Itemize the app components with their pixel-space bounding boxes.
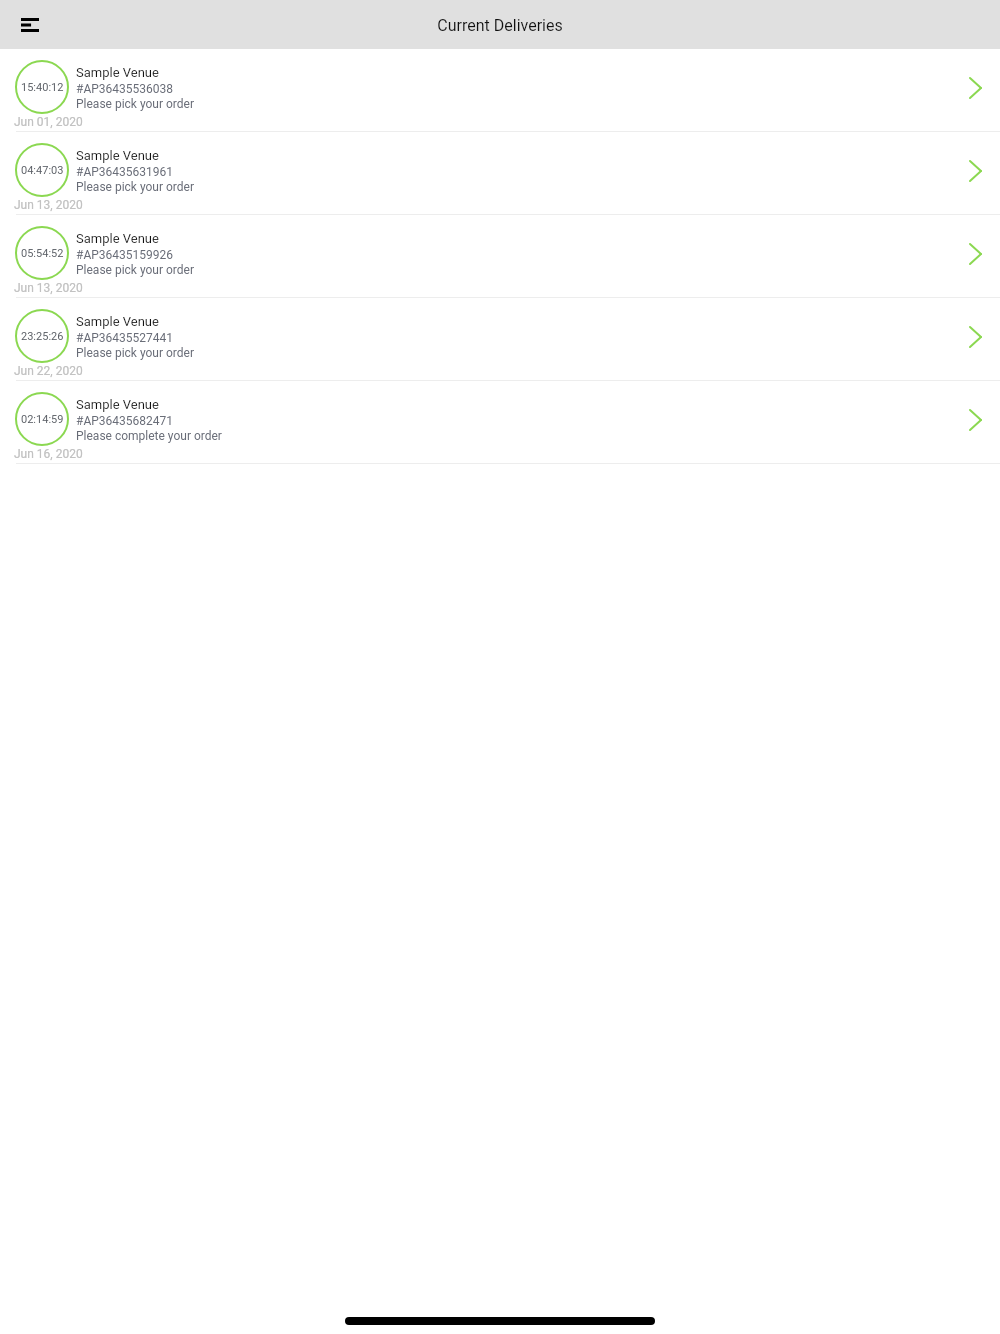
- staticText: Jun 13, 2020: [14, 281, 83, 295]
- staticText: Please pick your order: [76, 263, 194, 277]
- staticText: Current Deliveries: [437, 16, 563, 35]
- staticText: #AP36435631961: [76, 165, 173, 179]
- button[interactable]: 15:40:12: [0, 49, 1000, 132]
- staticText: Sample Venue: [76, 148, 159, 163]
- staticText: #AP36435536038: [76, 82, 173, 96]
- staticText: 15:40:12: [21, 81, 64, 94]
- staticText: Jun 22, 2020: [14, 364, 83, 378]
- button[interactable]: 23:25:26: [0, 298, 1000, 381]
- button[interactable]: 02:14:59: [0, 381, 1000, 464]
- staticText: Jun 16, 2020: [14, 447, 83, 461]
- staticText: Jun 13, 2020: [14, 198, 83, 212]
- staticText: Please complete your order: [76, 429, 222, 443]
- staticText: #AP36435159926: [76, 248, 173, 262]
- staticText: Sample Venue: [76, 65, 159, 80]
- staticText: #AP36435527441: [76, 331, 173, 345]
- button[interactable]: 04:47:03: [0, 132, 1000, 215]
- button[interactable]: Open navigation menu: [6, 1, 54, 49]
- staticText: Jun 01, 2020: [14, 115, 83, 129]
- staticText: 23:25:26: [21, 330, 64, 343]
- staticText: Please pick your order: [76, 346, 194, 360]
- staticText: Sample Venue: [76, 314, 159, 329]
- staticText: Please pick your order: [76, 180, 194, 194]
- staticText: Sample Venue: [76, 397, 159, 412]
- staticText: 04:47:03: [21, 164, 64, 177]
- staticText: 05:54:52: [21, 247, 64, 260]
- staticText: Sample Venue: [76, 231, 159, 246]
- staticText: Please pick your order: [76, 97, 194, 111]
- staticText: 02:14:59: [21, 413, 64, 426]
- staticText: #AP36435682471: [76, 414, 173, 428]
- button[interactable]: 05:54:52: [0, 215, 1000, 298]
